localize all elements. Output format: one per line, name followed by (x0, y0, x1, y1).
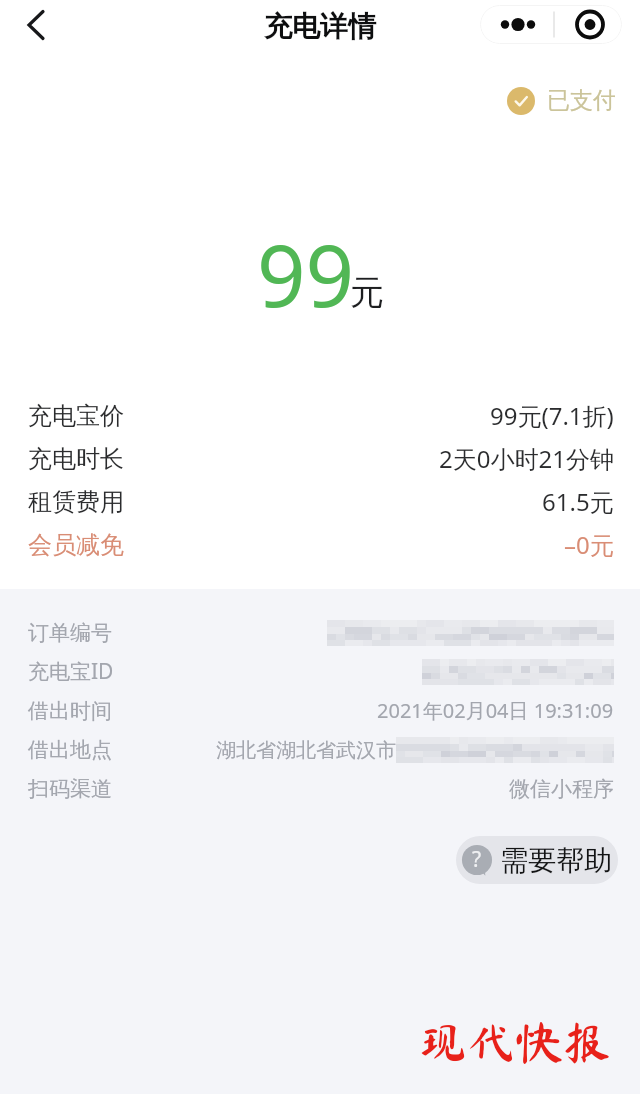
button[interactable]: 已支付 (507, 86, 616, 115)
button[interactable]: 借出地点 (0, 730, 640, 769)
button[interactable]: 充电宝ID (0, 652, 640, 691)
button[interactable]: Menu (480, 5, 622, 44)
button[interactable]: 扫码渠道 (0, 769, 640, 808)
button[interactable]: ? (456, 836, 618, 884)
staticText: 99 (257, 216, 355, 332)
staticText: 元 (350, 271, 384, 314)
button[interactable]: 充电时长 (0, 437, 640, 480)
button[interactable]: 会员减免 (0, 523, 640, 566)
staticText: 租赁费用 (28, 487, 124, 517)
button[interactable]: 订单编号 (0, 613, 640, 652)
staticText: ? (472, 845, 482, 874)
staticText: –0元 (564, 528, 614, 561)
staticText: 已支付 (547, 86, 616, 115)
staticText: 充电宝价 (28, 401, 124, 431)
button[interactable]: 租赁费用 (0, 480, 640, 523)
staticText: 借出时间 (28, 698, 112, 724)
staticText: 2021年02月04日 19:31:09 (377, 697, 614, 724)
staticText: 充电详情 (264, 9, 376, 44)
staticText: 会员减免 (28, 530, 124, 560)
staticText: 现代快报 (419, 1018, 612, 1066)
staticText: 充电宝ID (28, 657, 114, 686)
button[interactable]: 借出时间 (0, 691, 640, 730)
staticText: 微信小程序 (509, 776, 614, 802)
button[interactable]: 充电宝价 (0, 394, 640, 437)
staticText: 借出地点 (28, 737, 112, 763)
staticText: 订单编号 (28, 620, 112, 646)
staticText: 99元(7.1折) (490, 399, 614, 432)
staticText: 需要帮助 (500, 843, 612, 878)
staticText: 扫码渠道 (28, 776, 112, 802)
staticText: 充电时长 (28, 444, 124, 474)
staticText: 61.5元 (542, 485, 614, 518)
staticText: 2天0小时21分钟 (439, 442, 614, 475)
staticText: 湖北省湖北省武汉市 (216, 738, 396, 763)
button[interactable]: Back (8, 0, 64, 50)
